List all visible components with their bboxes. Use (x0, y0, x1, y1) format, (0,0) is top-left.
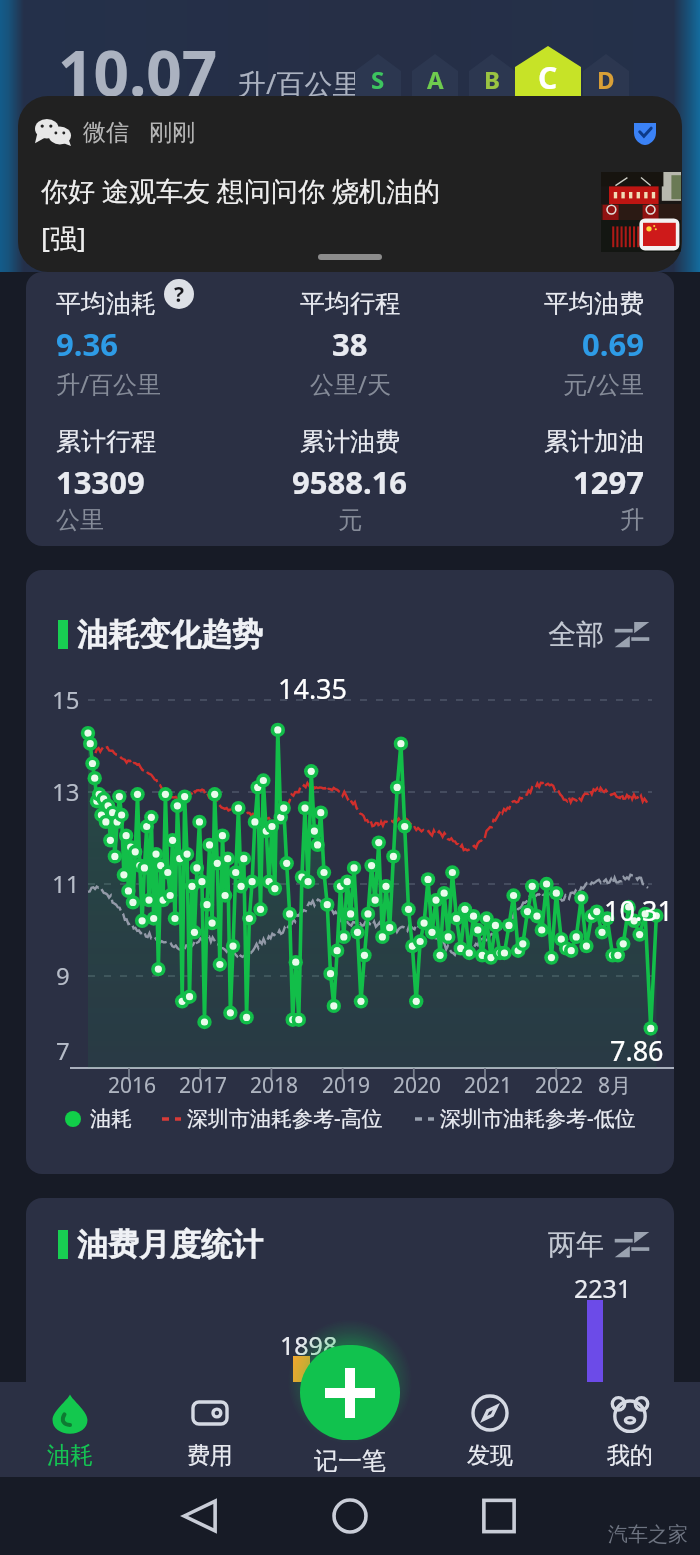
staticText: 深圳市油耗参考-低位 (440, 1104, 636, 1133)
staticText: 2020 (393, 1071, 442, 1100)
staticText: 升/百公里 (238, 64, 361, 102)
button[interactable]: 发现 (420, 1382, 560, 1477)
button[interactable]: Change range (548, 1227, 650, 1262)
staticText: 1898 (280, 1328, 338, 1362)
staticText: 14.35 (278, 670, 348, 707)
staticText: 15 (52, 683, 80, 716)
button[interactable]: 平均行程 (272, 288, 428, 400)
staticText: 微信 (83, 118, 129, 147)
button[interactable]: 平均油耗 (56, 288, 212, 400)
other: Verified (634, 121, 656, 145)
button[interactable]: 微信 (18, 96, 682, 272)
staticText: 7.86 (610, 1032, 664, 1069)
staticText: 公里 (56, 505, 104, 535)
staticText: B (484, 63, 500, 96)
button[interactable]: Home (332, 1499, 368, 1533)
staticText: 公里/天 (310, 367, 391, 400)
staticText: 2022 (535, 1071, 584, 1100)
staticText: 油耗 (90, 1106, 132, 1132)
staticText: 费用 (187, 1441, 233, 1470)
staticText: 深圳市油耗参考-高位 (187, 1104, 383, 1133)
staticText: 平均行程 (300, 288, 400, 319)
staticText: 元 (338, 505, 362, 535)
staticText: 发现 (467, 1441, 513, 1470)
staticText: 累计油费 (300, 426, 400, 457)
staticText: ? (174, 280, 185, 309)
staticText: 我的 (607, 1441, 653, 1470)
staticText: 2021 (464, 1071, 513, 1100)
staticText: 两年 (548, 1227, 604, 1262)
staticText: C (538, 57, 558, 98)
button[interactable]: 累计行程 (56, 426, 212, 535)
button[interactable]: 说明 (164, 279, 194, 309)
staticText: D (597, 63, 615, 96)
button[interactable]: 累计油费 (272, 426, 428, 535)
staticText: 11 (52, 867, 80, 900)
staticText: 10.07 (58, 30, 218, 114)
staticText: 平均油费 (544, 288, 644, 319)
staticText: 0.69 (582, 323, 644, 365)
staticText: 升/百公里 (56, 367, 161, 400)
staticText: 8月 (598, 1071, 632, 1100)
button[interactable]: 费用 (140, 1382, 280, 1477)
staticText: 升 (620, 505, 644, 535)
staticText: 2019 (322, 1071, 371, 1100)
staticText: 2017 (179, 1071, 228, 1100)
staticText: 13 (52, 775, 80, 808)
staticText: 7 (56, 1034, 70, 1067)
staticText: 9.36 (56, 323, 118, 365)
staticText: A (427, 63, 444, 96)
staticText: [强] (41, 219, 86, 256)
button[interactable]: 平均油费 (488, 288, 644, 400)
button[interactable]: 我的 (560, 1382, 700, 1477)
button[interactable]: 记一笔 (300, 1345, 400, 1440)
staticText: 13309 (56, 461, 145, 503)
staticText: 全部 (548, 617, 604, 652)
staticText: 油耗 (47, 1441, 93, 1470)
staticText: 你好 途观车友 想问问你 烧机油的 (41, 172, 441, 209)
button[interactable]: 记一笔 (314, 1446, 386, 1476)
staticText: 9588.16 (292, 461, 408, 503)
staticText: S (371, 63, 385, 96)
staticText: 元/公里 (563, 367, 644, 400)
button[interactable]: Back (182, 1499, 218, 1533)
staticText: 平均油耗 (56, 288, 156, 319)
staticText: 累计行程 (56, 426, 156, 457)
button[interactable]: 油耗 (0, 1382, 140, 1477)
staticText: 2231 (574, 1271, 632, 1305)
staticText: 2016 (108, 1071, 157, 1100)
staticText: 38 (332, 323, 368, 365)
staticText: 10.31 (604, 892, 674, 929)
staticText: 汽车之家 (608, 1522, 688, 1547)
button[interactable]: Change range (548, 617, 650, 652)
staticText: 累计加油 (544, 426, 644, 457)
button[interactable]: Recents (481, 1499, 517, 1533)
button[interactable]: 累计加油 (488, 426, 644, 535)
staticText: 2018 (250, 1071, 299, 1100)
staticText: 刚刚 (149, 118, 195, 147)
staticText: 油耗变化趋势 (77, 615, 263, 654)
staticText: 油费月度统计 (77, 1225, 263, 1264)
staticText: 9 (56, 959, 70, 992)
staticText: 1297 (573, 461, 644, 503)
